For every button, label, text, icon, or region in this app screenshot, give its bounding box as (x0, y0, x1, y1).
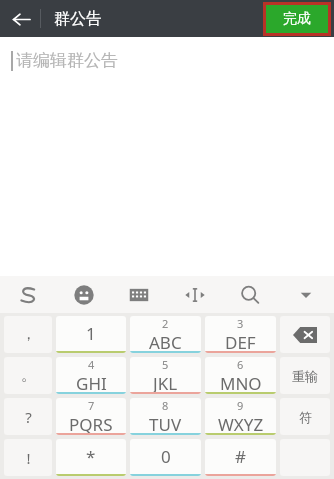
button[interactable]: 符 (280, 398, 330, 435)
staticText: ， (21, 325, 36, 344)
staticText: 符 (299, 409, 312, 425)
staticText: 2 (162, 316, 169, 331)
button[interactable]: ? (4, 398, 52, 435)
staticText: JKL (153, 372, 178, 392)
button[interactable]: Back (4, 2, 38, 36)
staticText: 0 (161, 445, 171, 468)
button[interactable]: 4 (56, 357, 126, 394)
button[interactable]: Keyboard (117, 276, 161, 313)
button[interactable]: 重输 (280, 357, 330, 394)
button[interactable]: 6 (205, 357, 276, 394)
staticText: GHI (76, 372, 107, 392)
staticText: ! (26, 448, 31, 468)
staticText: 5 (162, 357, 169, 372)
staticText: 7 (88, 398, 95, 413)
staticText: DEF (225, 331, 256, 351)
staticText: 群公告 (54, 9, 102, 29)
button[interactable]: 。 (4, 357, 52, 394)
button[interactable]: 2 (130, 316, 201, 353)
staticText: # (235, 445, 246, 468)
staticText: WXYZ (218, 413, 264, 433)
button[interactable]: 3 (205, 316, 276, 353)
button[interactable]: Emoji (62, 276, 106, 313)
staticText: ABC (149, 331, 182, 351)
staticText: 4 (88, 357, 95, 372)
button[interactable]: Search (228, 276, 272, 313)
staticText: * (86, 445, 96, 468)
button[interactable]: 完成 (266, 5, 328, 33)
button[interactable]: Sogou input (6, 276, 50, 313)
button[interactable]: 5 (130, 357, 201, 394)
staticText: ? (25, 407, 32, 427)
staticText: 完成 (283, 10, 311, 28)
button[interactable]: 1 (56, 316, 126, 353)
button[interactable]: 9 (205, 398, 276, 435)
button[interactable]: 7 (56, 398, 126, 435)
button[interactable]: 8 (130, 398, 201, 435)
staticText: 。 (21, 366, 36, 385)
staticText: 请编辑群公告 (16, 50, 118, 71)
button[interactable]: Cursor move (173, 276, 217, 313)
staticText: 6 (237, 357, 244, 372)
staticText: PQRS (69, 413, 113, 433)
button[interactable]: 0 (130, 439, 201, 476)
staticText: 8 (162, 398, 169, 413)
button[interactable]: ! (4, 439, 52, 476)
staticText: 重输 (292, 368, 318, 384)
staticText: TUV (149, 413, 182, 433)
button[interactable]: # (205, 439, 276, 476)
button[interactable]: ， (4, 316, 52, 353)
staticText: MNO (220, 372, 262, 392)
button[interactable]: Delete (280, 316, 330, 353)
button[interactable]: * (56, 439, 126, 476)
staticText: 9 (237, 398, 244, 413)
button[interactable]: Hide keyboard (284, 276, 328, 313)
staticText: 1 (86, 322, 96, 345)
staticText: 3 (237, 316, 244, 331)
